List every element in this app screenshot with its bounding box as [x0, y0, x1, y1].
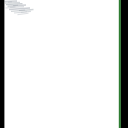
button[interactable]: Document preview — [0, 0, 128, 128]
